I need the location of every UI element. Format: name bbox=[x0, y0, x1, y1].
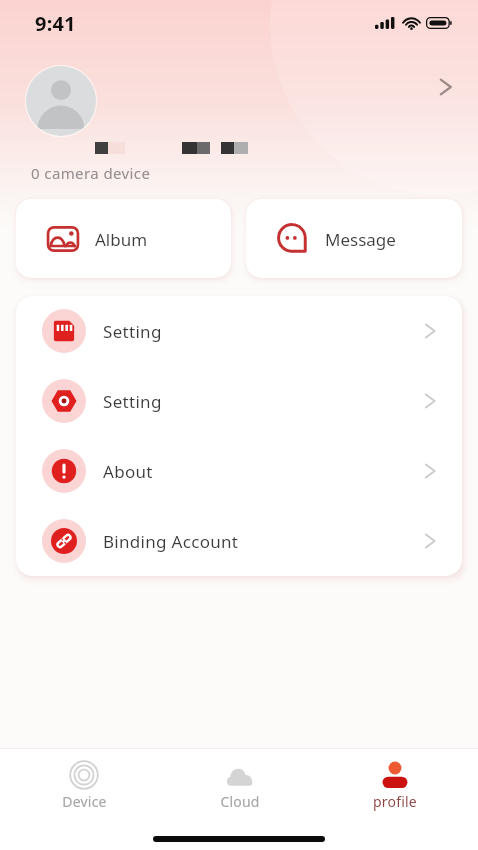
button[interactable]: profile bbox=[317, 749, 472, 815]
button[interactable]: Setting bbox=[16, 296, 462, 366]
staticText: Binding Account bbox=[103, 530, 239, 553]
staticText: Setting bbox=[103, 320, 162, 343]
staticText: 0 camera device bbox=[31, 163, 151, 183]
staticText: Cloud bbox=[220, 792, 260, 811]
staticText: Setting bbox=[103, 390, 162, 413]
button[interactable]: Message bbox=[246, 199, 462, 278]
staticText: Message bbox=[325, 228, 396, 251]
button[interactable]: Device bbox=[6, 749, 162, 815]
button[interactable]: Avatar bbox=[24, 64, 98, 138]
button[interactable]: Open profile details bbox=[424, 67, 464, 107]
staticText: profile bbox=[373, 792, 417, 811]
button[interactable]: Binding Account bbox=[16, 506, 462, 576]
button[interactable]: Cloud bbox=[162, 749, 317, 815]
staticText: About bbox=[103, 460, 153, 483]
button[interactable]: Album bbox=[16, 199, 231, 278]
button[interactable]: Setting bbox=[16, 366, 462, 436]
staticText: Album bbox=[95, 228, 148, 251]
staticText: Device bbox=[62, 792, 107, 811]
button[interactable]: About bbox=[16, 436, 462, 506]
staticText: 9:41 bbox=[35, 10, 76, 37]
